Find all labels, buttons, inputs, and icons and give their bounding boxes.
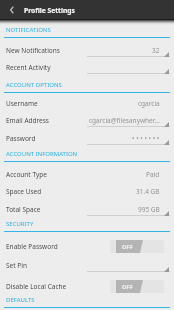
staticText: cgarcia@filesanywher…	[89, 116, 160, 125]
staticText: Username	[6, 99, 38, 108]
staticText: Account Type	[6, 170, 47, 179]
button[interactable]: Total Space	[0, 201, 174, 218]
staticText: OFF	[122, 243, 133, 251]
button[interactable]: Email Address	[0, 112, 174, 129]
staticText: Set Pin	[6, 261, 27, 270]
button[interactable]: New Notifications	[0, 42, 174, 59]
button[interactable]: Back	[0, 0, 22, 20]
button[interactable]: Space Used	[0, 183, 174, 200]
staticText: Password	[6, 134, 36, 143]
staticText: cgarcia	[138, 99, 160, 108]
button[interactable]: Enable Password	[0, 236, 174, 256]
staticText: • • • • • • •	[132, 134, 160, 143]
staticText: Space Used	[6, 187, 42, 196]
staticText: DEFAULTS	[6, 296, 35, 304]
staticText: Disable Local Cache	[6, 282, 67, 291]
button[interactable]: Disable Local Cache	[0, 276, 174, 296]
button[interactable]: Username	[0, 95, 174, 112]
staticText: NOTIFICATIONS	[6, 26, 51, 34]
staticText: 32	[152, 46, 160, 55]
staticText: Enable Password	[6, 242, 58, 251]
staticText: Recent Activity	[6, 63, 51, 72]
staticText: 995 GB	[138, 205, 160, 214]
staticText: Email Address	[6, 116, 49, 125]
button[interactable]: Password	[0, 130, 174, 147]
staticText: 31.4 GB	[136, 187, 160, 196]
staticText: ACCOUNT INFORMATION	[6, 150, 78, 158]
button[interactable]: Set Pin	[0, 257, 174, 274]
staticText: Profile Settings	[24, 6, 75, 15]
staticText: New Notifications	[6, 46, 60, 55]
staticText: Paid	[146, 170, 160, 179]
staticText: Total Space	[6, 205, 41, 214]
staticText: ACCOUNT OPTIONS	[6, 81, 62, 89]
staticText: SECURITY	[6, 220, 34, 228]
staticText: OFF	[122, 283, 133, 291]
button[interactable]: Recent Activity	[0, 59, 174, 76]
button[interactable]: Account Type	[0, 166, 174, 183]
